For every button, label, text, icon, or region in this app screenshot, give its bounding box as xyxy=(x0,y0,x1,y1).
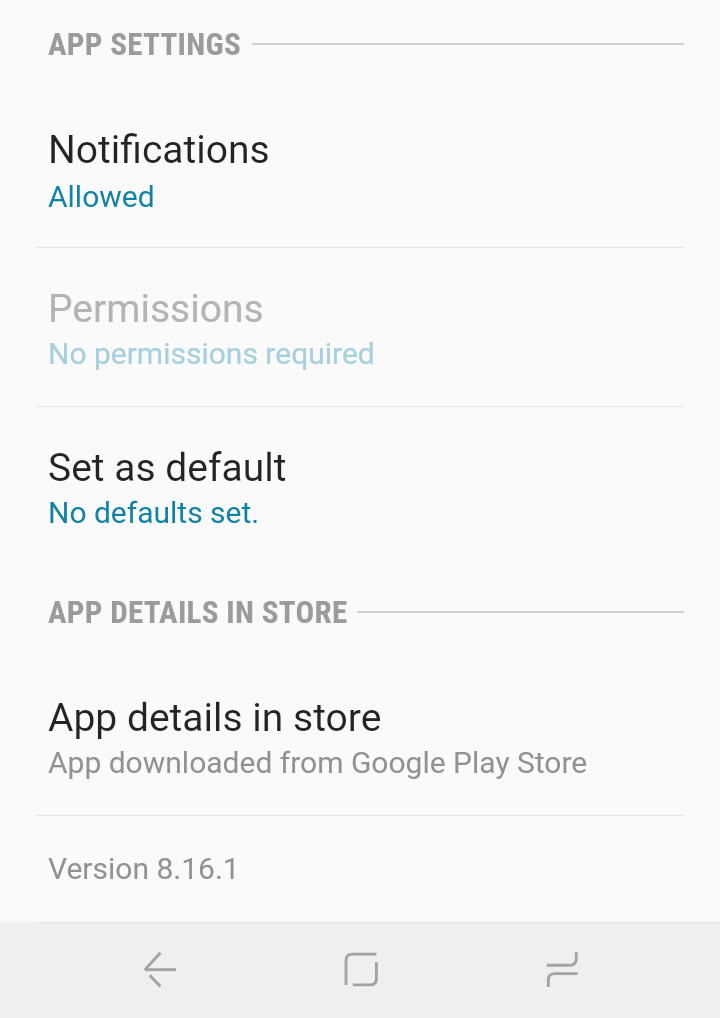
staticText: No permissions required xyxy=(48,336,375,371)
button[interactable]: Permissions xyxy=(0,248,720,407)
button[interactable]: Set as default xyxy=(0,407,720,560)
staticText: APP SETTINGS xyxy=(48,26,241,62)
button[interactable]: Notifications xyxy=(0,70,720,248)
staticText: Allowed xyxy=(48,179,155,214)
button[interactable]: Back xyxy=(60,922,261,1018)
staticText: App details in store xyxy=(48,695,382,741)
button[interactable]: Home xyxy=(261,922,461,1018)
staticText: App downloaded from Google Play Store xyxy=(48,745,588,780)
staticText: No defaults set. xyxy=(48,495,260,530)
staticText: Notifications xyxy=(48,127,270,173)
staticText: Set as default xyxy=(48,445,287,491)
staticText: APP DETAILS IN STORE xyxy=(48,594,348,630)
staticText: Permissions xyxy=(48,286,264,332)
button[interactable]: Version 8.16.1 xyxy=(0,816,720,921)
button[interactable]: Recent apps xyxy=(461,922,661,1018)
staticText: Version 8.16.1 xyxy=(48,851,240,886)
button[interactable]: App details in store xyxy=(0,640,720,816)
